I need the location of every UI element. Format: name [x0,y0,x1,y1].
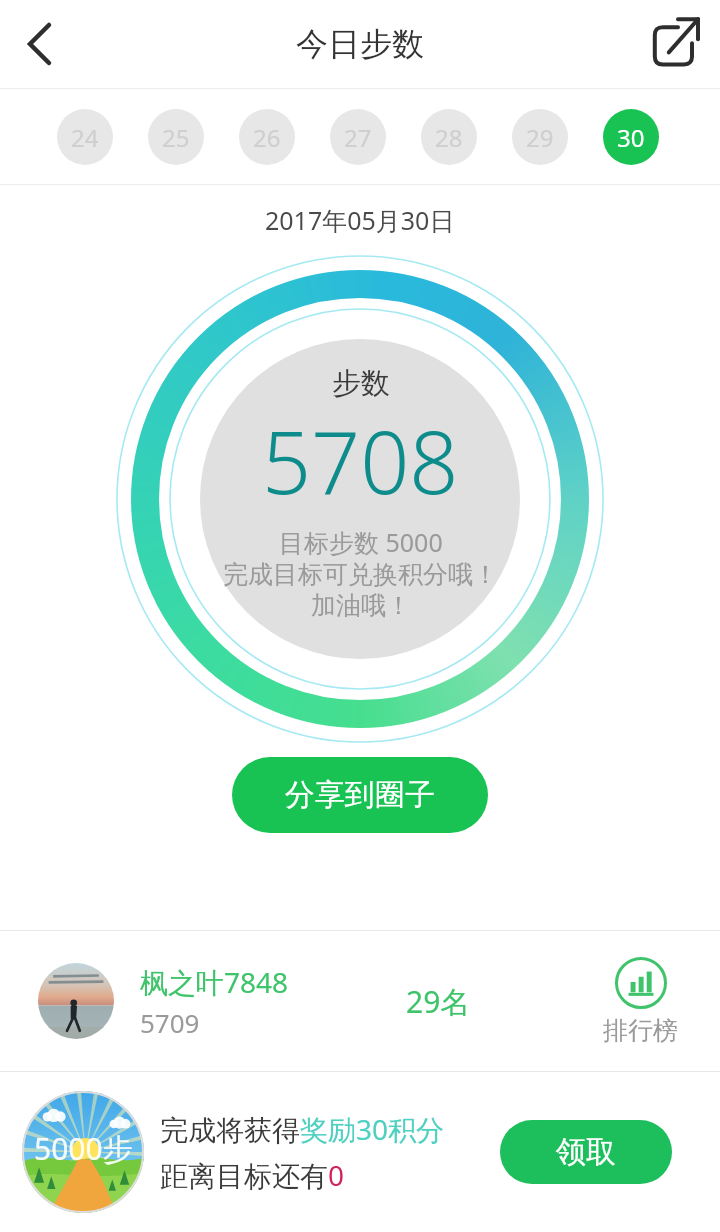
staticText: 距离目标还有0 [160,1156,345,1194]
staticText: 26 [253,121,281,154]
staticText: 29名 [406,981,471,1022]
button[interactable]: 30 [603,109,659,165]
staticText: 步数 [332,365,390,402]
staticText: 完成将获得奖励30积分 [160,1110,445,1148]
staticText: 今日步数 [296,24,424,64]
button[interactable]: 29 [512,109,568,165]
button[interactable]: 分享到圈子 [232,757,488,833]
button[interactable]: 领取 [500,1120,672,1184]
button[interactable]: 枫之叶7848 [0,931,720,1071]
staticText: 加油哦！ [311,590,411,621]
staticText: 30 [617,121,645,154]
button[interactable]: 27 [330,109,386,165]
button[interactable]: 24 [57,109,113,165]
staticText: 2017年05月30日 [265,203,455,237]
staticText: 29 [526,121,554,154]
staticText: 25 [162,121,190,154]
staticText: 27 [344,121,372,154]
button[interactable]: Back [8,12,72,76]
staticText: 枫之叶7848 [140,963,289,1001]
button[interactable]: 25 [148,109,204,165]
staticText: 24 [71,121,99,154]
staticText: 目标步数 5000 [279,525,443,559]
staticText: 领取 [556,1133,616,1171]
button[interactable]: Share [644,14,704,74]
staticText: 5709 [140,1005,200,1040]
staticText: 5708 [262,402,459,519]
staticText: 完成目标可兑换积分哦！ [223,559,498,590]
button[interactable]: 28 [421,109,477,165]
staticText: 排行榜 [603,1015,678,1046]
button[interactable]: 26 [239,109,295,165]
staticText: 28 [435,121,463,154]
staticText: 分享到圈子 [285,776,435,814]
staticText: 5000步 [34,1128,133,1169]
button[interactable]: 排行榜 [603,957,678,1046]
